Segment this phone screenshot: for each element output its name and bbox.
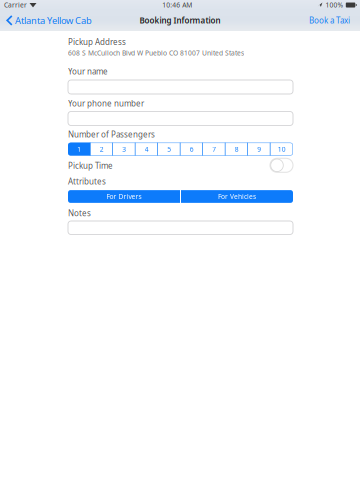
button[interactable]: 4 (135, 143, 158, 155)
staticText: 1 (77, 145, 81, 154)
button[interactable]: 3 (113, 143, 135, 155)
button[interactable]: Book a Taxi (305, 10, 360, 31)
staticText: Carrier (4, 1, 27, 9)
button[interactable]: Atlanta Yellow Cab (0, 10, 96, 31)
staticText: Attributes (68, 176, 106, 187)
staticText: 10:46 AM (162, 1, 192, 9)
staticText: Your phone number (68, 98, 144, 109)
staticText: Your name (68, 66, 108, 77)
button[interactable] (68, 221, 293, 234)
button[interactable] (68, 80, 293, 94)
staticText: 608 S McCulloch Blvd W Pueblo CO 81007 U… (68, 48, 244, 57)
staticText: For Vehicles (218, 192, 256, 201)
button[interactable]: 10 (270, 143, 293, 155)
button[interactable] (68, 111, 293, 125)
button[interactable]: For Vehicles (181, 190, 293, 203)
staticText: Pickup Time (68, 160, 113, 171)
staticText: 9 (257, 145, 261, 154)
button[interactable]: 5 (158, 143, 180, 155)
staticText: For Drivers (106, 192, 141, 201)
button[interactable]: 1 (68, 143, 90, 155)
button[interactable]: 7 (203, 143, 225, 155)
staticText: 7 (212, 145, 216, 154)
staticText: 2 (100, 145, 104, 154)
staticText: Pickup Address (68, 37, 126, 47)
button[interactable]: 9 (248, 143, 270, 155)
staticText: 3 (122, 145, 126, 154)
staticText: 6 (190, 145, 194, 154)
button[interactable]: Pickup Time (270, 158, 293, 172)
staticText: 10 (278, 145, 286, 154)
staticText: 8 (235, 145, 239, 154)
staticText: Book a Taxi (309, 15, 350, 26)
staticText: 100% (325, 1, 343, 9)
staticText: 5 (167, 145, 171, 154)
button[interactable]: 8 (225, 143, 248, 155)
staticText: Atlanta Yellow Cab (15, 14, 92, 27)
staticText: Number of Passengers (68, 129, 155, 140)
button[interactable]: 6 (180, 143, 203, 155)
staticText: 4 (145, 145, 149, 154)
button[interactable]: 2 (90, 143, 113, 155)
button[interactable]: For Drivers (68, 190, 180, 203)
staticText: Notes (68, 208, 91, 218)
staticText: Booking Information (139, 15, 220, 26)
